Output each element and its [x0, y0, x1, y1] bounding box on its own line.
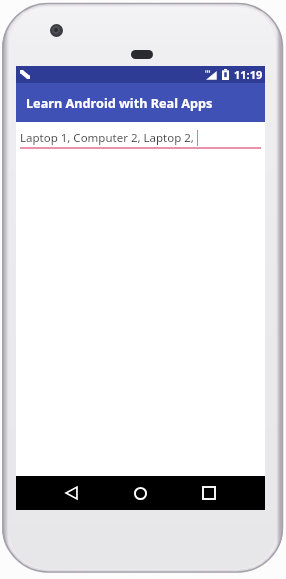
button[interactable]: Back	[56, 478, 86, 508]
button[interactable]: Learn Android with Real Apps	[16, 83, 265, 122]
button[interactable]: Laptop 1, Computer 2, Laptop 2,	[16, 122, 265, 152]
staticText: Laptop 1, Computer 2, Laptop 2,	[20, 130, 194, 146]
button[interactable]: Recent apps	[194, 478, 224, 508]
button[interactable]: Home	[125, 478, 155, 508]
staticText: Learn Android with Real Apps	[26, 94, 213, 111]
staticText: 11:19	[234, 67, 263, 82]
